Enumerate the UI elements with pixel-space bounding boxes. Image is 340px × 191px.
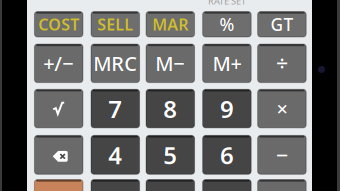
staticText: 7: [108, 93, 122, 125]
staticText: MRC: [93, 50, 137, 77]
button[interactable]: Backspace: [34, 135, 83, 174]
staticText: −: [276, 141, 288, 169]
button[interactable]: Memory recall clear: [91, 44, 140, 83]
button[interactable]: Divide: [258, 44, 306, 83]
button[interactable]: Square root: [34, 89, 83, 128]
button[interactable]: 8: [146, 89, 195, 128]
staticText: 4: [108, 139, 122, 171]
button[interactable]: 5: [146, 135, 195, 174]
button[interactable]: 1: [91, 179, 140, 191]
button[interactable]: Clear: [34, 179, 83, 191]
staticText: 9: [220, 93, 234, 125]
staticText: ÷: [276, 49, 288, 77]
staticText: +/−: [43, 50, 74, 77]
button[interactable]: Minus: [258, 135, 306, 174]
button[interactable]: Plus: [258, 179, 306, 191]
button[interactable]: Memory minus: [146, 44, 195, 83]
button[interactable]: 2: [146, 179, 195, 191]
button[interactable]: Cost: [34, 11, 83, 37]
button[interactable]: Multiply: [258, 89, 306, 128]
staticText: 6: [220, 139, 234, 171]
staticText: %: [219, 13, 234, 36]
staticText: M−: [155, 50, 185, 77]
staticText: RATE SET: [208, 0, 246, 7]
staticText: MAR: [152, 14, 188, 35]
staticText: SELL: [97, 14, 133, 35]
button[interactable]: Grand total: [258, 11, 306, 37]
button[interactable]: 3: [203, 179, 251, 191]
staticText: 8: [163, 93, 177, 125]
button[interactable]: Sell: [91, 11, 140, 37]
button[interactable]: 7: [91, 89, 140, 128]
button[interactable]: Plus minus: [34, 44, 83, 83]
staticText: GT: [270, 13, 293, 36]
button[interactable]: Margin: [146, 11, 195, 37]
staticText: 5: [163, 139, 177, 171]
staticText: M+: [212, 50, 241, 77]
button[interactable]: 4: [91, 135, 140, 174]
button[interactable]: 6: [203, 135, 251, 174]
button[interactable]: Percent: [203, 11, 251, 37]
staticText: ×: [276, 95, 287, 122]
button[interactable]: 9: [203, 89, 251, 128]
staticText: COST: [38, 14, 79, 35]
button[interactable]: Memory plus: [203, 44, 251, 83]
